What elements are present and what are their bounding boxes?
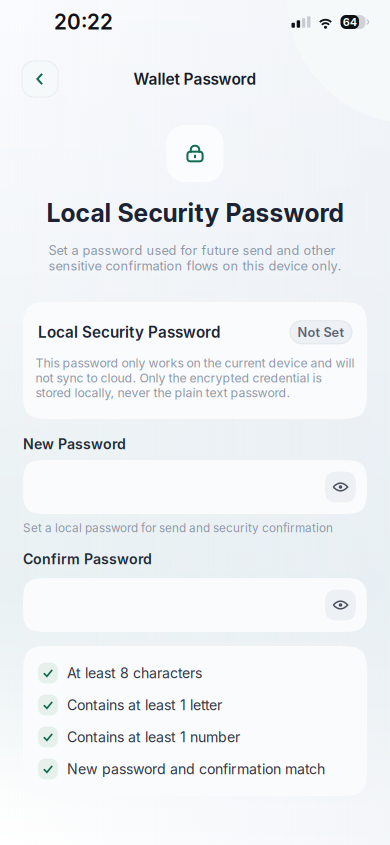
staticText: At least 8 characters [67, 664, 202, 681]
staticText: This password only works on the current … [35, 356, 354, 400]
staticText: Local Security Password [46, 198, 343, 228]
button[interactable]: Back [22, 61, 58, 97]
button[interactable]: Show password [325, 471, 356, 502]
staticText: 64 [343, 15, 357, 29]
staticText: Local Security Password [38, 323, 220, 341]
staticText: Set a password used for future send and … [48, 242, 341, 273]
staticText: Wallet Password [133, 70, 256, 88]
staticText: Set a local password for send and securi… [23, 521, 333, 535]
staticText: 20:22 [54, 9, 113, 34]
button[interactable]: Show password [325, 589, 356, 620]
staticText: New Password [23, 435, 126, 452]
staticText: Contains at least 1 number [67, 728, 240, 745]
staticText: Not Set [297, 324, 344, 340]
staticText: Contains at least 1 letter [67, 696, 222, 713]
staticText: Confirm Password [23, 550, 152, 567]
staticText: New password and confirmation match [67, 760, 325, 777]
